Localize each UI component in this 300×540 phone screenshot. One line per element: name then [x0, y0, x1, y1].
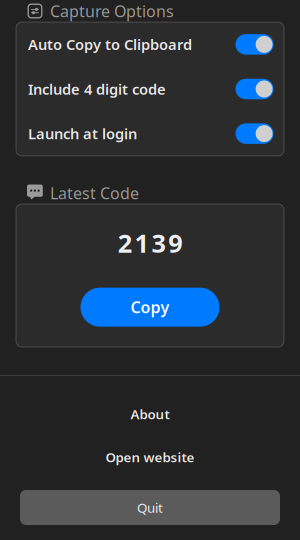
staticText: Include 4 digit code [28, 79, 166, 99]
staticText: Capture Options [50, 0, 174, 22]
button[interactable]: Include 4 digit code [16, 67, 284, 111]
staticText: 2139 [118, 226, 182, 260]
staticText: Auto Copy to Clipboard [28, 35, 192, 54]
staticText: Quit [137, 499, 163, 516]
button[interactable]: About [0, 404, 300, 424]
staticText: Copy [130, 296, 169, 318]
button[interactable]: Auto Copy to Clipboard [16, 22, 284, 67]
button[interactable]: Copy [80, 288, 219, 327]
staticText: Launch at login [28, 124, 137, 143]
button[interactable]: Open website [0, 447, 300, 467]
staticText: Open website [105, 448, 194, 466]
staticText: About [130, 405, 169, 423]
button[interactable]: Quit [20, 490, 280, 525]
staticText: Latest Code [50, 182, 139, 204]
button[interactable]: Launch at login [16, 111, 284, 156]
